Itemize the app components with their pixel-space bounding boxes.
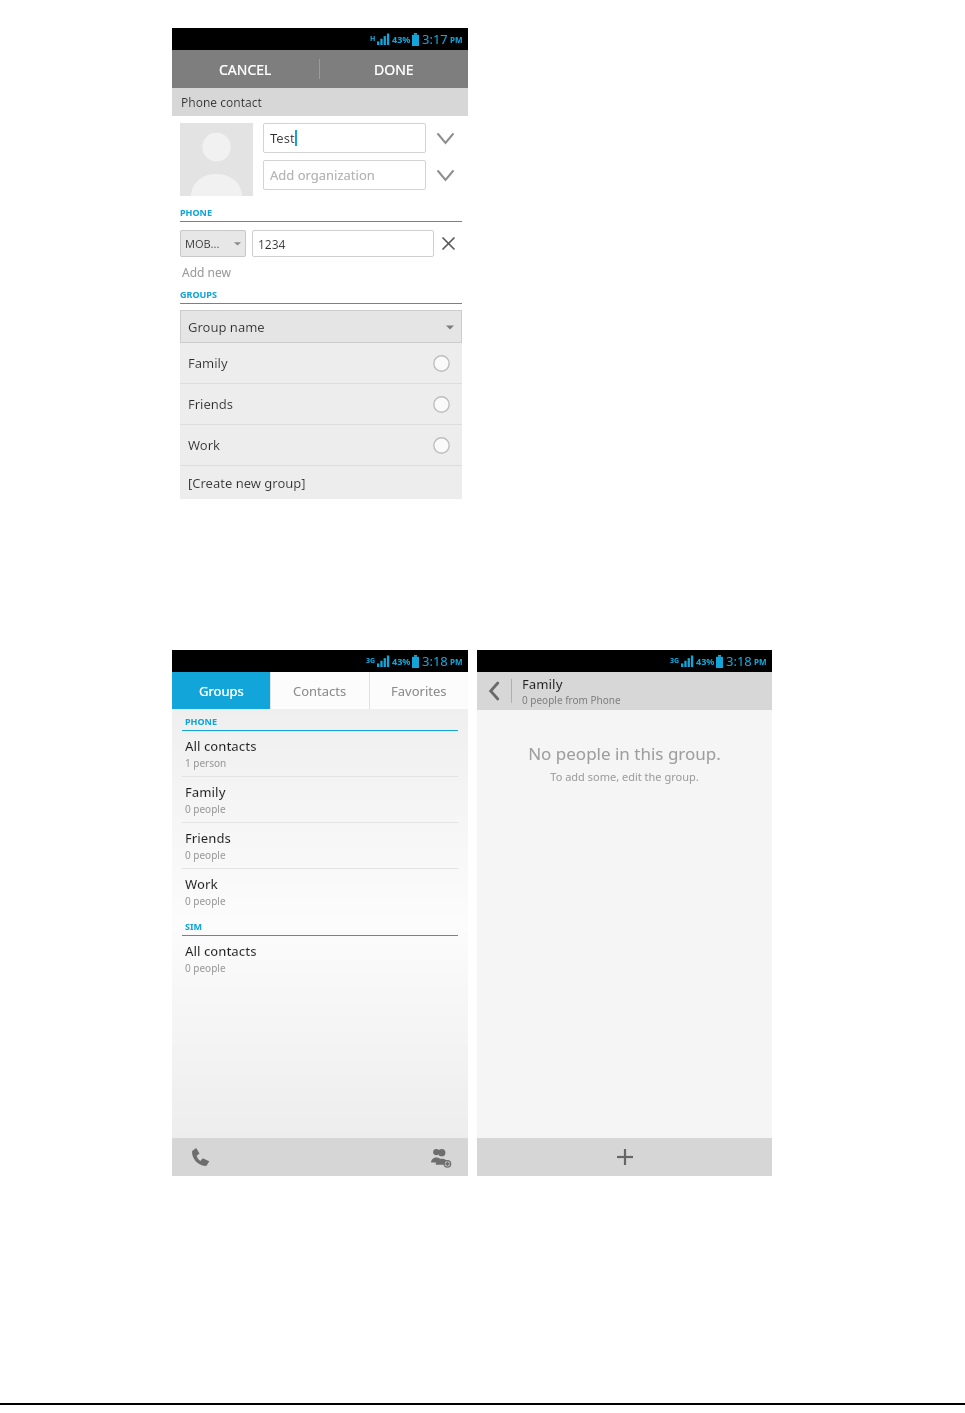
button[interactable]: Friends [172,823,468,869]
staticText: Favorites [391,682,447,700]
button[interactable]: CANCEL [172,50,319,88]
staticText: 3:18 [726,652,752,670]
button[interactable]: Contacts [270,672,369,709]
button[interactable]: Work [172,869,468,914]
button[interactable]: Add people [477,1138,772,1176]
staticText: MOB... [185,236,220,251]
staticText: 0 people [185,894,226,908]
button[interactable]: Back [477,672,511,710]
staticText: 3:17 [422,30,448,48]
staticText: 0 people [185,802,226,816]
staticText: Group name [188,318,265,336]
staticText: 43% [696,655,715,667]
staticText: Phone contact [181,94,262,110]
button[interactable]: Add group [424,1141,456,1173]
staticText: Friends [185,829,231,847]
staticText: 3:18 [422,652,448,670]
button[interactable]: Friends [180,384,462,424]
staticText: Test [270,129,295,147]
staticText: Family [522,675,563,693]
staticText: Add new [182,264,231,280]
staticText: PM [754,656,767,667]
staticText: Contacts [293,682,347,700]
button[interactable]: MOB... [180,230,246,257]
staticText: DONE [374,60,414,79]
button[interactable]: Favorites [369,672,468,709]
staticText: 3G [670,656,680,666]
button[interactable]: [Create new group] [180,466,462,499]
staticText: Family [185,783,226,801]
staticText: No people in this group. [528,742,721,765]
staticText: GROUPS [180,288,217,300]
staticText: To add some, edit the group. [550,769,699,784]
staticText: CANCEL [219,60,272,79]
staticText: Friends [188,395,234,413]
button[interactable]: Expand name [432,123,458,153]
staticText: All contacts [185,737,257,755]
button[interactable]: Family [172,777,468,823]
staticText: 43% [392,655,411,667]
staticText: [Create new group] [188,474,306,492]
button[interactable]: Group name [180,310,462,343]
staticText: Add organization [270,166,375,184]
button[interactable]: Remove phone number [434,230,462,257]
staticText: 43% [392,33,411,45]
button[interactable]: Groups [172,672,270,709]
staticText: PM [450,34,463,45]
staticText: 0 people [185,848,226,862]
staticText: 3G [366,656,376,666]
staticText: H [370,34,376,44]
button[interactable]: All contacts [172,731,468,777]
staticText: 0 people from Phone [522,693,621,707]
staticText: PHONE [185,715,217,727]
staticText: 1 person [185,756,227,770]
staticText: PM [450,656,463,667]
button[interactable]: DONE [320,50,468,88]
button[interactable]: All contacts [172,936,468,981]
button[interactable]: Add new [182,264,468,280]
staticText: All contacts [185,942,257,960]
staticText: SIM [185,920,202,932]
staticText: Work [185,875,218,893]
button[interactable]: Family [180,343,462,383]
staticText: 1234 [258,236,286,252]
staticText: PHONE [180,206,212,218]
staticText: Work [188,436,221,454]
button[interactable]: Expand organization [432,160,458,190]
button[interactable]: Dialer [184,1141,216,1173]
staticText: Groups [199,682,244,700]
button[interactable]: Work [180,425,462,465]
staticText: 0 people [185,961,226,975]
staticText: Family [188,354,228,372]
